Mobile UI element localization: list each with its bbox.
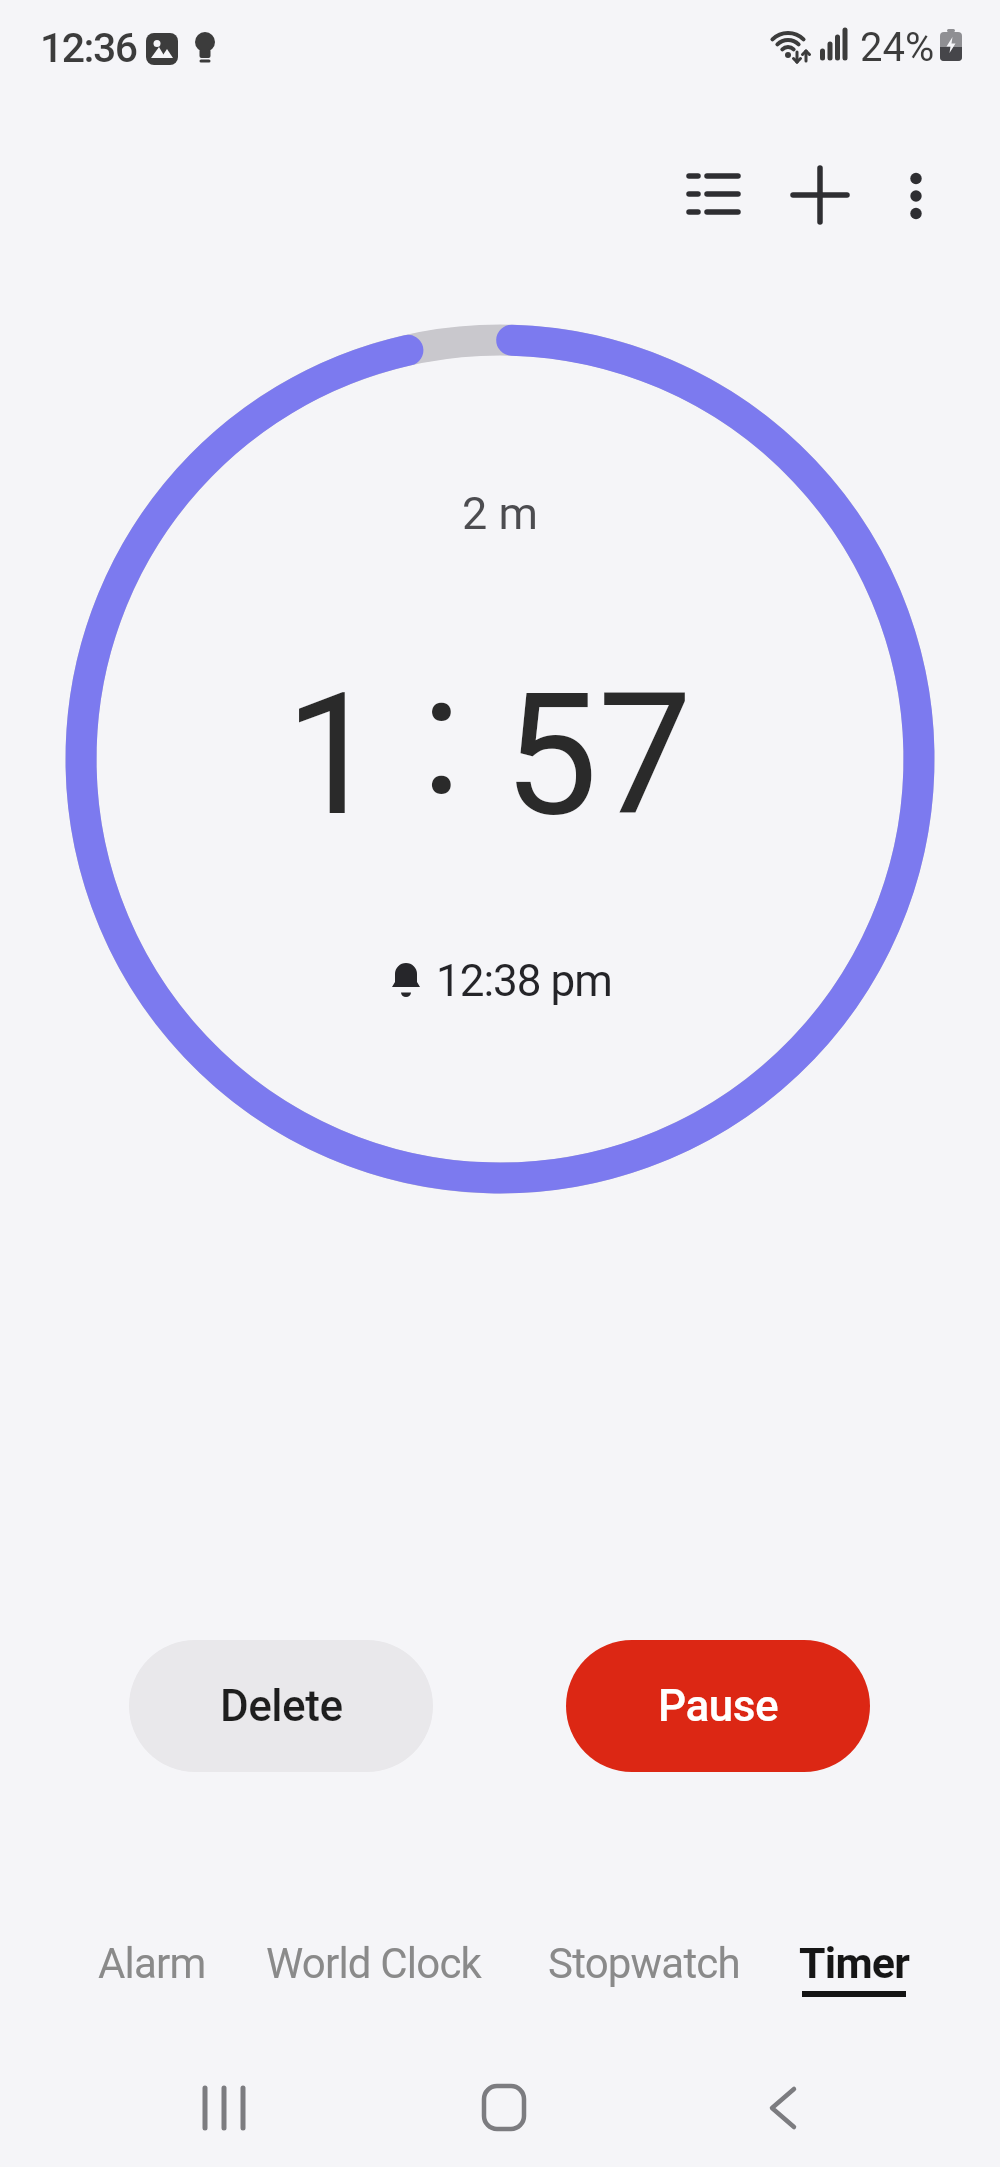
staticText: Pause [658,1680,779,1732]
button[interactable]: Alarm [87,1925,217,2001]
staticText: 2 m [462,487,538,540]
button[interactable] [476,2080,532,2136]
button[interactable] [755,2080,811,2136]
staticText: 12:38 pm [436,955,612,1007]
staticText: 1 : 57 [285,637,693,854]
button[interactable]: World Clock [254,1925,494,2001]
staticText: Stopwatch [548,1939,740,1988]
button[interactable]: Stopwatch [536,1925,751,2001]
button[interactable]: Timer [787,1925,922,2001]
button[interactable]: Delete [129,1640,433,1772]
staticText: 12:36 [40,24,137,72]
button[interactable] [884,160,948,224]
staticText: World Clock [266,1939,482,1988]
button[interactable] [196,2080,252,2136]
button[interactable]: Pause [566,1640,870,1772]
button[interactable] [788,160,852,224]
staticText: Timer [799,1938,910,1988]
staticText: Delete [220,1680,343,1732]
staticText: 24% [860,24,935,71]
button[interactable] [680,160,744,224]
staticText: Alarm [98,1939,206,1988]
